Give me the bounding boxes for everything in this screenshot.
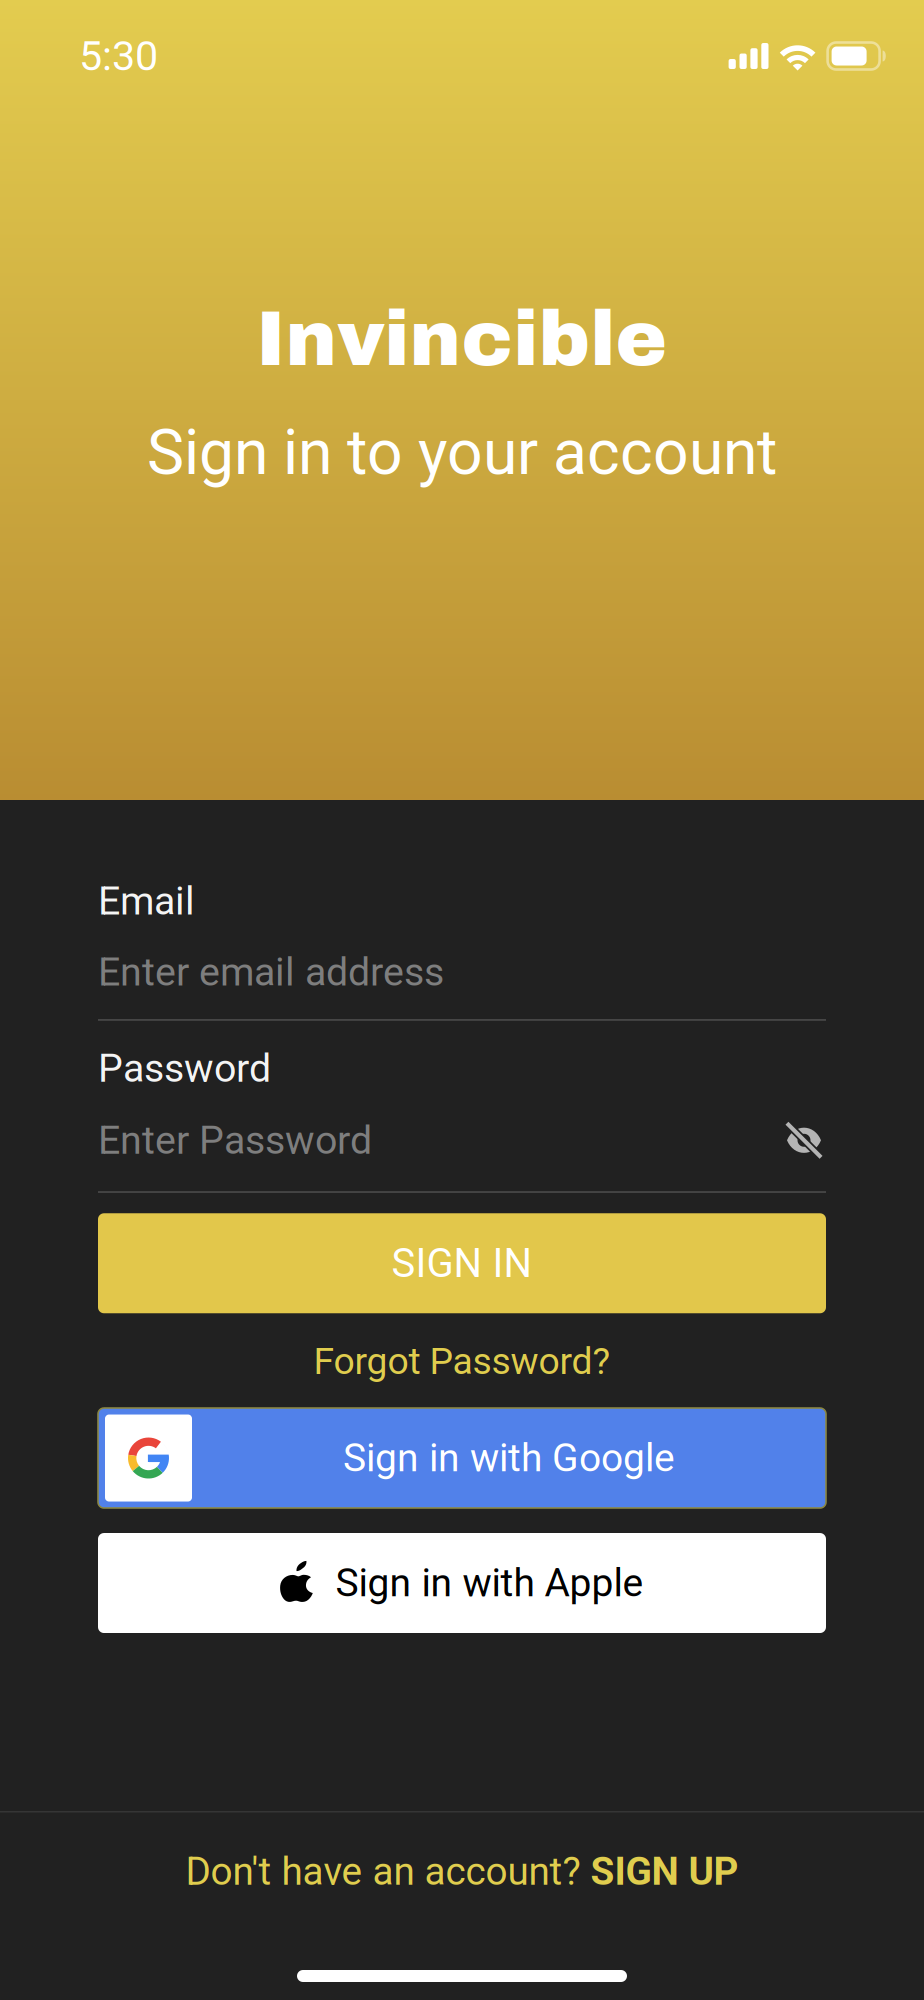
staticText: Forgot Password?	[313, 1339, 610, 1383]
staticText: SIGN IN	[391, 1240, 532, 1287]
staticText: Sign in with Google	[343, 1435, 675, 1481]
button[interactable]: Show password	[782, 1118, 826, 1162]
button[interactable]: SIGN IN	[98, 1213, 826, 1313]
button[interactable]: Sign in with Apple	[98, 1533, 826, 1633]
staticText: Enter Password	[98, 1117, 372, 1163]
button[interactable]: Don't have an account?	[0, 1812, 924, 1930]
staticText: Sign in to your account	[147, 416, 777, 489]
staticText: Email	[98, 878, 195, 924]
staticText: Sign in with Apple	[335, 1560, 643, 1606]
staticText: 5:30	[79, 32, 158, 80]
staticText: Password	[98, 1045, 271, 1091]
button[interactable]: Sign in with Google	[98, 1408, 826, 1508]
staticText: Enter email address	[98, 949, 444, 995]
button[interactable]: Forgot Password?	[98, 1339, 826, 1383]
staticText: Invincible	[256, 297, 667, 381]
staticText: Don't have an account?	[185, 1849, 590, 1894]
staticText: SIGN UP	[590, 1849, 738, 1894]
